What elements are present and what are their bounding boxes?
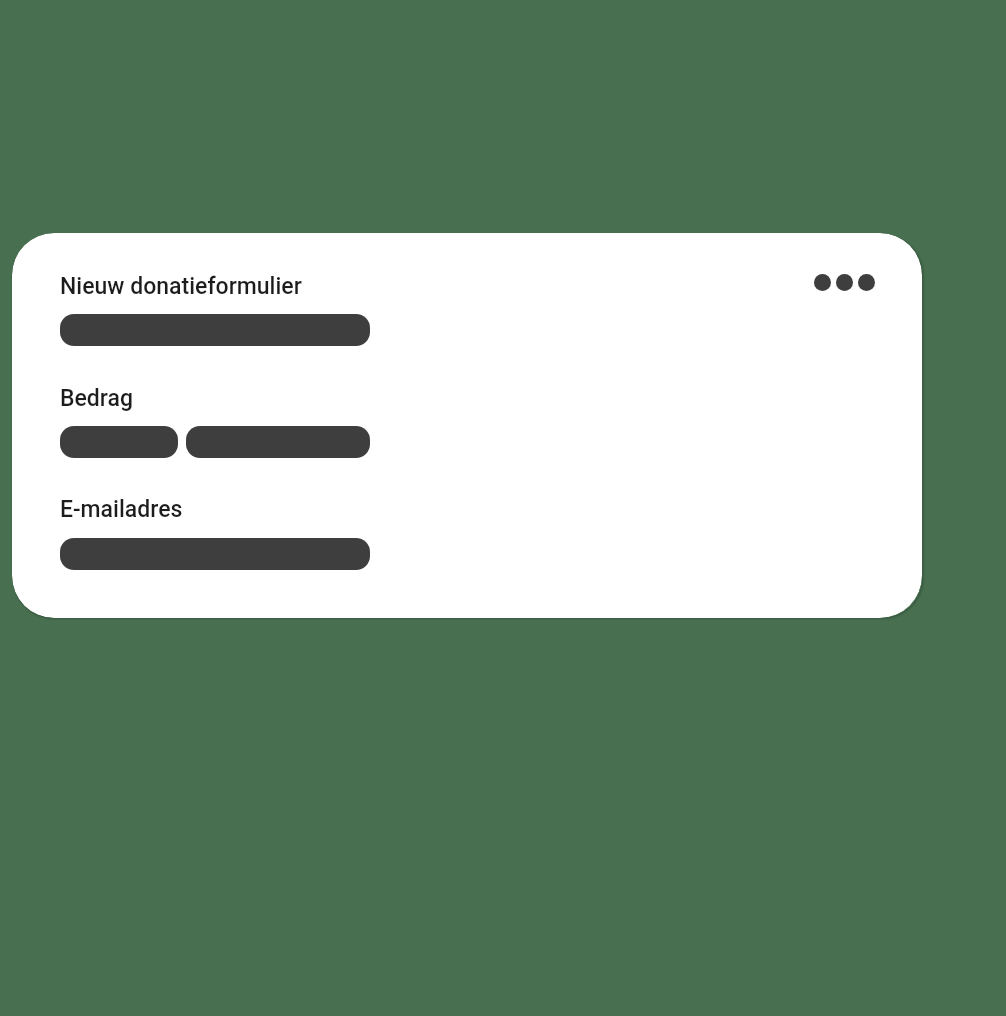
staticText: Nieuw donatieformulier (60, 273, 302, 300)
button[interactable]: Bedrag (186, 426, 370, 458)
button[interactable]: Naam (60, 314, 370, 346)
button[interactable]: Valuta (60, 426, 178, 458)
button[interactable]: More options (809, 260, 879, 304)
button[interactable]: E-mailadres (60, 538, 370, 570)
staticText: Bedrag (60, 385, 134, 412)
staticText: E-mailadres (60, 496, 183, 523)
button[interactable]: Nieuw donatieformulier (12, 233, 922, 618)
